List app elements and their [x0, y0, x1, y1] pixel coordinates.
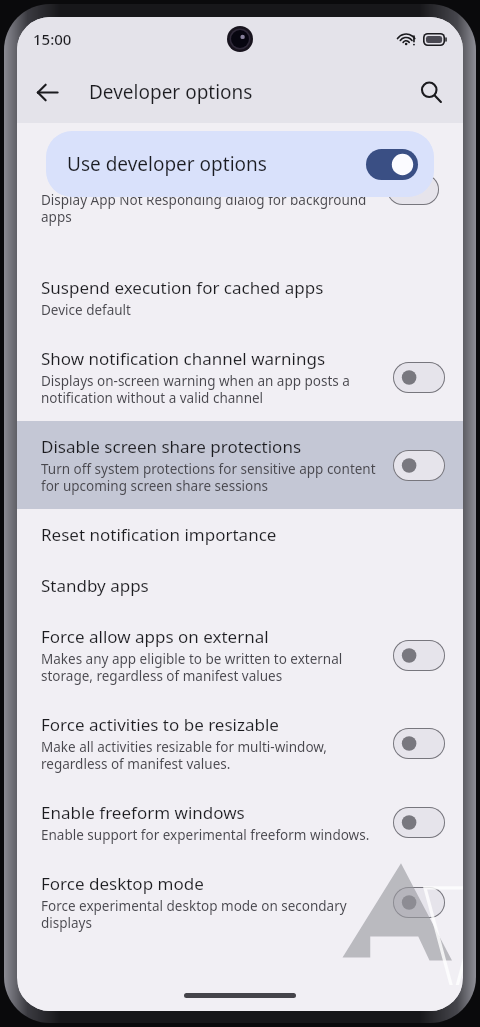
button[interactable]: Toggle [393, 640, 445, 671]
button[interactable]: Toggle [393, 450, 445, 481]
button[interactable]: Back [23, 68, 71, 116]
staticText: 15:00 [33, 29, 72, 49]
button[interactable]: Suspend execution for cached apps [17, 262, 463, 333]
button[interactable]: Standby apps [17, 560, 463, 611]
staticText: Force allow apps on external [41, 625, 269, 648]
staticText: Show notification channel warnings [41, 347, 326, 370]
button[interactable]: Reset notification importance [17, 509, 463, 560]
button[interactable]: Use developer options [46, 131, 434, 197]
button[interactable]: Show notification channel warnings [17, 333, 463, 421]
button[interactable]: Toggle [387, 174, 439, 205]
button[interactable]: Toggle [393, 362, 445, 393]
button[interactable]: Toggle [393, 807, 445, 838]
staticText: Display App Not Responding dialog for ba… [41, 191, 367, 226]
staticText: Makes any app eligible to be written to … [41, 650, 343, 685]
button[interactable]: Force allow apps on external [17, 611, 463, 699]
staticText: Turn off system protections for sensitiv… [41, 460, 376, 495]
staticText: Reset notification importance [41, 523, 277, 546]
staticText: Force activities to be resizable [41, 713, 279, 736]
staticText: Suspend execution for cached apps [41, 276, 324, 299]
staticText: Force experimental desktop mode on secon… [41, 897, 347, 932]
staticText: Use developer options [67, 151, 267, 177]
button[interactable]: Search [407, 68, 455, 116]
button[interactable]: Force desktop mode [17, 858, 463, 946]
staticText: Force desktop mode [41, 872, 204, 895]
staticText: Device default [41, 301, 131, 319]
staticText: Enable freeform windows [41, 801, 245, 824]
button[interactable]: Enable freeform windows [17, 787, 463, 858]
staticText: Standby apps [41, 574, 149, 597]
staticText: Displays on-screen warning when an app p… [41, 372, 350, 407]
staticText: Developer options [89, 79, 253, 105]
button[interactable]: Force activities to be resizable [17, 699, 463, 787]
button[interactable]: Toggle [393, 887, 445, 918]
staticText: Make all activities resizable for multi-… [41, 738, 327, 773]
staticText: Disable screen share protections [41, 435, 302, 458]
button[interactable]: Disable screen share protections [17, 421, 463, 509]
button[interactable]: Toggle [393, 728, 445, 759]
staticText: Enable support for experimental freeform… [41, 826, 370, 844]
